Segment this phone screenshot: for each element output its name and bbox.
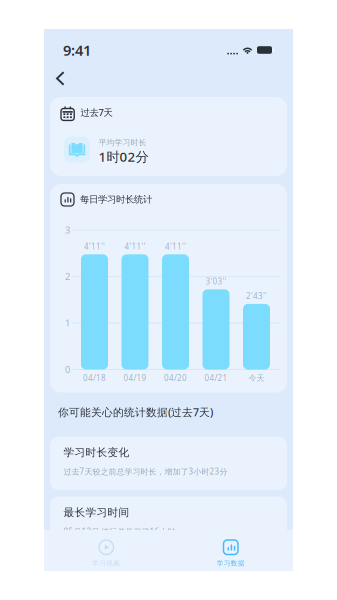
staticText: 3	[65, 224, 70, 236]
staticText: 学习时长变化	[63, 446, 129, 459]
staticText: 学习视频	[92, 559, 120, 567]
staticText: 4'11''	[124, 241, 145, 252]
button[interactable]: 最长学习时间	[50, 496, 287, 550]
staticText: 过去7天	[80, 106, 112, 118]
staticText: 每日学习时长统计	[80, 194, 152, 205]
button[interactable]: 学习时长变化	[50, 436, 287, 490]
staticText: 4'11''	[165, 241, 186, 252]
staticText: 9:41	[63, 40, 91, 60]
staticText: 今天	[248, 373, 264, 383]
staticText: 学习数据	[217, 559, 245, 567]
staticText: 3'03''	[205, 276, 226, 287]
staticText: 05月13日 连玩总学习了16小时	[63, 526, 175, 537]
staticText: 2'43''	[246, 290, 267, 301]
staticText: 0	[65, 363, 70, 376]
staticText: 过去7天较之前总学习时长，增加了3小时23分	[63, 466, 227, 477]
staticText: 你可能关心的统计数据(过去7天)	[58, 405, 213, 419]
button[interactable]: 学习数据	[168, 530, 293, 571]
button[interactable]: Back	[44, 65, 73, 92]
staticText: 04/19	[123, 373, 146, 383]
staticText: 平均学习时长	[98, 138, 146, 147]
staticText: 04/21	[204, 373, 227, 383]
staticText: 2	[65, 270, 70, 283]
staticText: 04/18	[83, 373, 106, 383]
staticText: 最长学习时间	[63, 506, 129, 519]
staticText: 1时02分	[98, 148, 148, 165]
button[interactable]: 学习视频	[44, 530, 168, 571]
staticText: 1	[65, 317, 70, 329]
staticText: 4'11''	[84, 241, 105, 252]
staticText: 04/20	[164, 373, 187, 383]
